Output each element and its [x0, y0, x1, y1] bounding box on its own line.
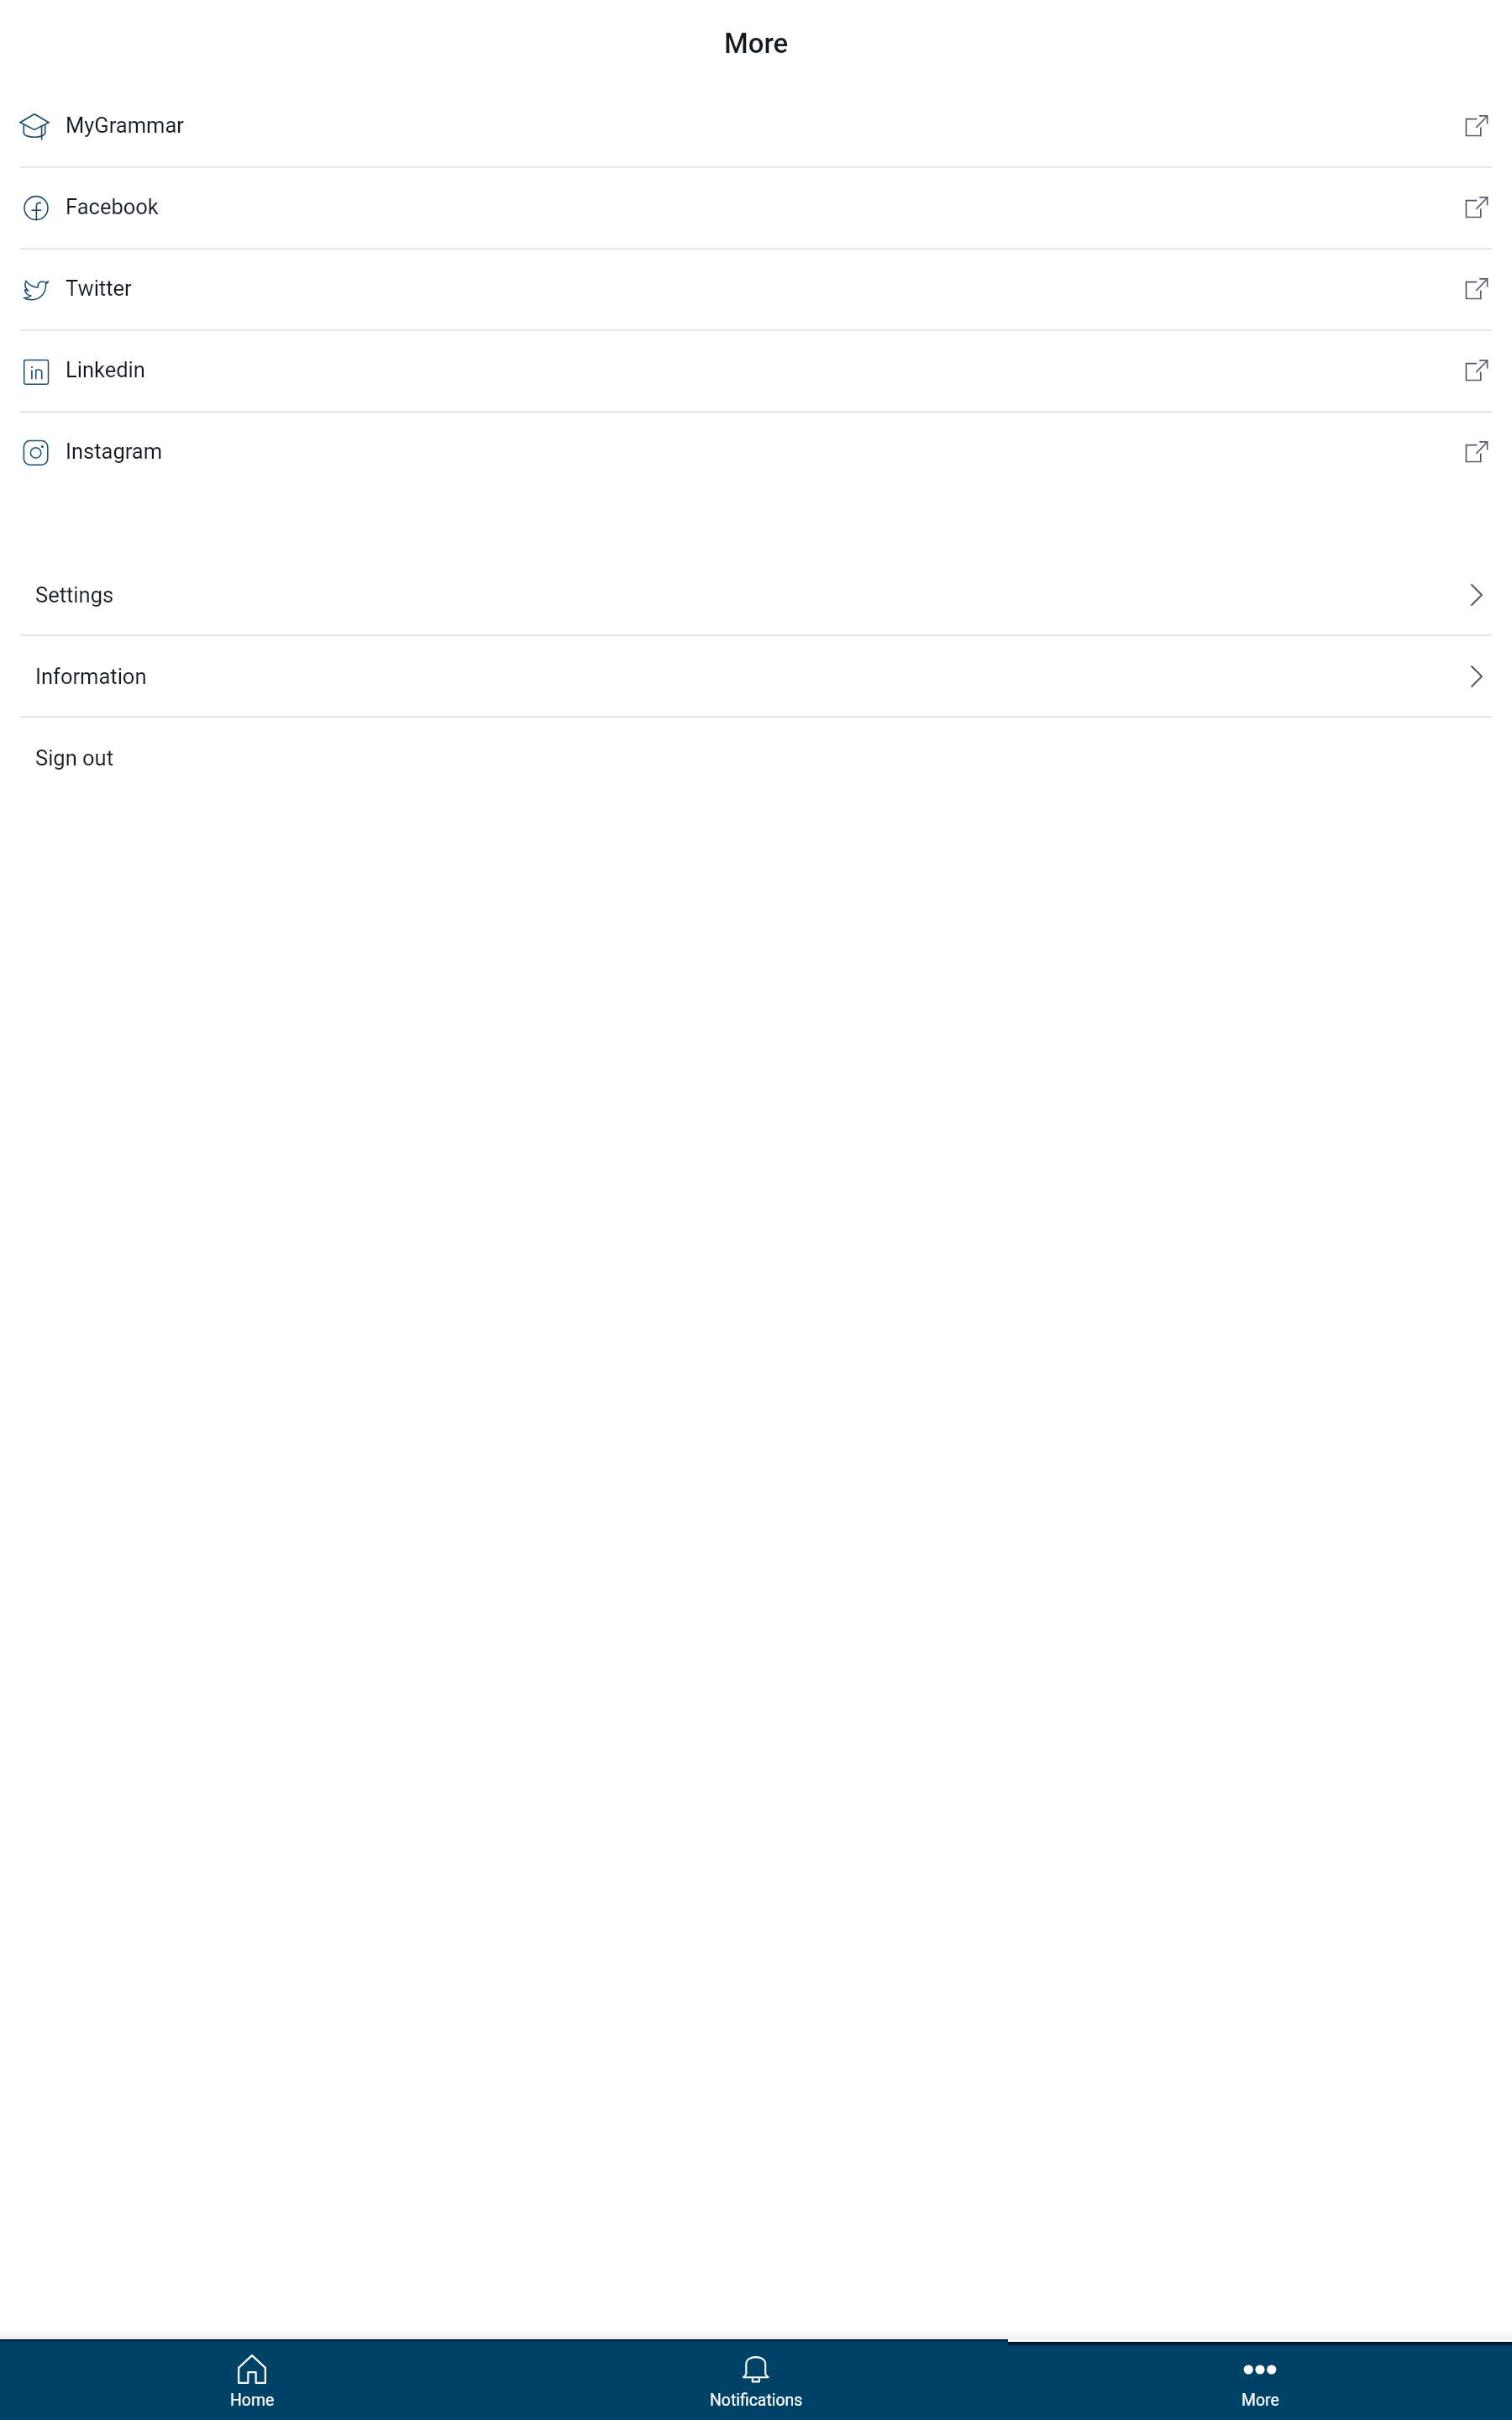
staticText: Facebook [66, 194, 159, 219]
other: Open Linkedin in browser [1464, 360, 1488, 383]
other: Open Information [1466, 665, 1488, 687]
staticText: More [1242, 2391, 1279, 2410]
staticText: Information [35, 664, 147, 689]
button[interactable]: Twitter [0, 250, 1512, 331]
staticText: MyGrammar [66, 113, 184, 138]
other: Open Instagram in browser [1464, 441, 1488, 465]
staticText: Instagram [66, 439, 163, 464]
staticText: Sign out [35, 745, 114, 771]
button[interactable]: Home [0, 2339, 504, 2420]
other: Open MyGrammar in browser [1464, 115, 1488, 139]
staticText: Linkedin [66, 357, 145, 382]
staticText: Twitter [66, 276, 132, 301]
staticText: Home [230, 2391, 275, 2410]
staticText: Settings [35, 582, 114, 608]
button[interactable]: Facebook [0, 168, 1512, 250]
button[interactable]: More [1008, 2339, 1512, 2420]
button[interactable]: Linkedin [0, 331, 1512, 413]
button[interactable]: Information [0, 636, 1512, 718]
button[interactable]: Settings [0, 555, 1512, 636]
button[interactable]: Sign out [0, 718, 1512, 797]
other: Open Facebook in browser [1464, 197, 1488, 220]
button[interactable]: Instagram [0, 413, 1512, 492]
other: Open Settings [1466, 584, 1488, 606]
button[interactable]: MyGrammar [0, 87, 1512, 168]
staticText: More [724, 28, 789, 60]
button[interactable]: Notifications [504, 2339, 1008, 2420]
other: Open Twitter in browser [1464, 278, 1488, 302]
staticText: Notifications [710, 2391, 803, 2410]
